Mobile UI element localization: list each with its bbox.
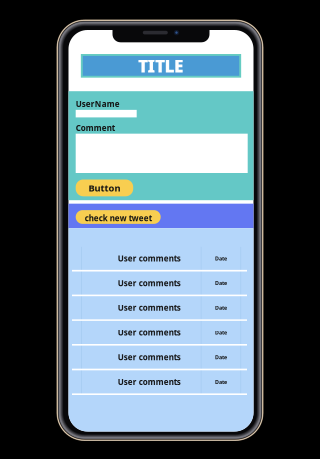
staticText: Button	[88, 182, 120, 194]
button[interactable]: User comments	[68, 247, 253, 270]
staticText: UserName	[76, 98, 120, 109]
staticText: User comments	[118, 352, 181, 362]
button[interactable]: User comments	[68, 321, 253, 344]
staticText: check new tweet	[85, 213, 152, 223]
staticText: User comments	[118, 327, 181, 338]
staticText: Date	[215, 354, 227, 361]
staticText: User comments	[118, 302, 181, 313]
button[interactable]: User comments	[68, 346, 253, 369]
staticText: Date	[215, 304, 227, 311]
staticText: User comments	[118, 278, 181, 288]
staticText: TITLE	[138, 54, 184, 77]
button[interactable]: User comments	[68, 271, 253, 295]
button[interactable]: User comments	[68, 296, 253, 319]
staticText: Date	[215, 378, 227, 385]
button[interactable]: User comments	[68, 370, 253, 393]
button[interactable]: Button	[76, 179, 133, 196]
staticText: User comments	[118, 376, 181, 387]
button[interactable]: check new tweet	[76, 210, 161, 224]
staticText: User comments	[118, 253, 181, 264]
staticText: Comment	[76, 123, 115, 133]
staticText: Date	[215, 279, 227, 287]
staticText: Date	[215, 255, 227, 262]
staticText: Date	[215, 329, 227, 336]
